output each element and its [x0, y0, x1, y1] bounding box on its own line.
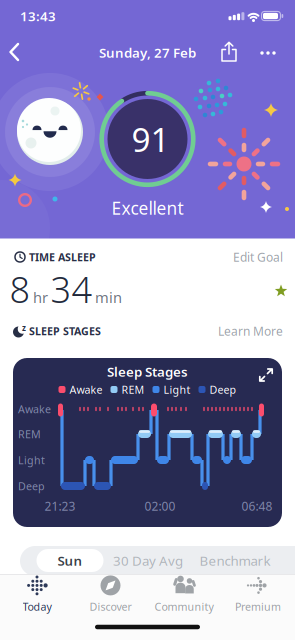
- button[interactable]: Premium: [223, 573, 293, 615]
- staticText: SLEEP STAGES: [29, 324, 101, 338]
- staticText: Light: [18, 453, 45, 467]
- button[interactable]: [218, 40, 240, 64]
- staticText: Sleep Stages: [107, 363, 188, 380]
- staticText: Discover: [89, 599, 131, 614]
- staticText: Deep: [209, 382, 236, 397]
- button[interactable]: Today: [2, 573, 72, 615]
- staticText: Today: [22, 599, 51, 614]
- staticText: hr: [33, 287, 48, 307]
- staticText: Excellent: [111, 196, 183, 219]
- staticText: Edit Goal: [233, 249, 283, 265]
- staticText: 13:43: [20, 7, 56, 25]
- staticText: 30 Day Avg: [113, 552, 183, 569]
- staticText: 91: [131, 117, 169, 161]
- button[interactable]: Sun: [36, 549, 103, 572]
- button[interactable]: Edit Goal: [203, 249, 283, 265]
- staticText: 06:48: [241, 498, 272, 514]
- button[interactable]: [256, 41, 280, 65]
- staticText: REM: [121, 382, 144, 397]
- staticText: Deep: [18, 479, 45, 493]
- staticText: Light: [163, 382, 190, 397]
- staticText: 8: [9, 265, 30, 313]
- staticText: Learn More: [218, 323, 283, 339]
- staticText: Sunday, 27 Feb: [99, 44, 196, 61]
- staticText: TIME ASLEEP: [29, 250, 96, 264]
- button[interactable]: Discover: [75, 573, 145, 615]
- staticText: Awake: [69, 382, 102, 397]
- staticText: 02:00: [144, 498, 175, 514]
- staticText: Benchmark: [199, 552, 270, 569]
- button[interactable]: [4, 40, 26, 64]
- staticText: min: [95, 287, 122, 307]
- staticText: 21:23: [44, 498, 75, 514]
- staticText: z: [22, 323, 26, 333]
- staticText: Sun: [57, 552, 82, 569]
- button[interactable]: 30 Day Avg: [113, 552, 183, 569]
- staticText: Premium: [235, 599, 281, 614]
- button[interactable]: Benchmark: [199, 552, 270, 569]
- button[interactable]: Learn More: [203, 323, 283, 339]
- button[interactable]: [257, 366, 275, 384]
- staticText: Community: [154, 599, 213, 614]
- staticText: Awake: [18, 402, 51, 416]
- button[interactable]: Community: [149, 573, 219, 615]
- staticText: 34: [50, 265, 92, 313]
- staticText: REM: [18, 427, 41, 441]
